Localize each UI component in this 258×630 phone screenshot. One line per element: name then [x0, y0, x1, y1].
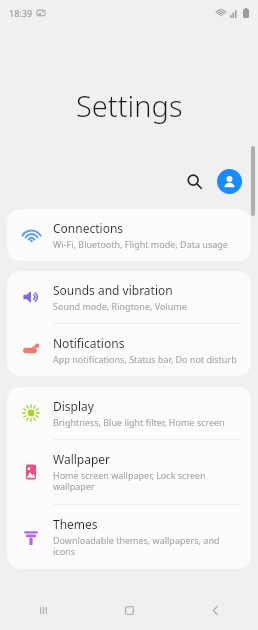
staticText: Wallpaper: [53, 451, 111, 467]
staticText: Brightness, Blue light filter, Home scre…: [53, 416, 225, 428]
staticText: Notifications: [53, 335, 125, 351]
button[interactable]: Wallpaper: [7, 440, 251, 504]
staticText: Display: [53, 398, 94, 414]
button[interactable]: Connections: [7, 209, 251, 261]
staticText: Connections: [53, 220, 124, 236]
staticText: Wi-Fi, Bluetooth, Flight mode, Data usag…: [53, 238, 228, 250]
button[interactable]: Sounds and vibration: [7, 271, 251, 323]
button[interactable]: Display: [7, 387, 251, 439]
button[interactable]: Notifications: [7, 324, 251, 376]
staticText: Downloadable themes, wallpapers, and ico…: [53, 534, 239, 558]
staticText: App notifications, Status bar, Do not di…: [53, 353, 237, 365]
button[interactable]: Search: [179, 166, 209, 196]
staticText: Settings: [76, 86, 183, 125]
staticText: 18:39: [9, 7, 33, 19]
button[interactable]: Themes: [7, 505, 251, 569]
button[interactable]: Home: [86, 590, 172, 630]
button[interactable]: Back: [172, 590, 258, 630]
staticText: Sounds and vibration: [53, 282, 173, 298]
button[interactable]: Recents: [0, 590, 86, 630]
staticText: Sound mode, Ringtone, Volume: [53, 300, 187, 312]
staticText: Themes: [53, 516, 98, 532]
button[interactable]: Account: [217, 169, 242, 194]
staticText: Home screen wallpaper, Lock screen wallp…: [53, 469, 239, 493]
